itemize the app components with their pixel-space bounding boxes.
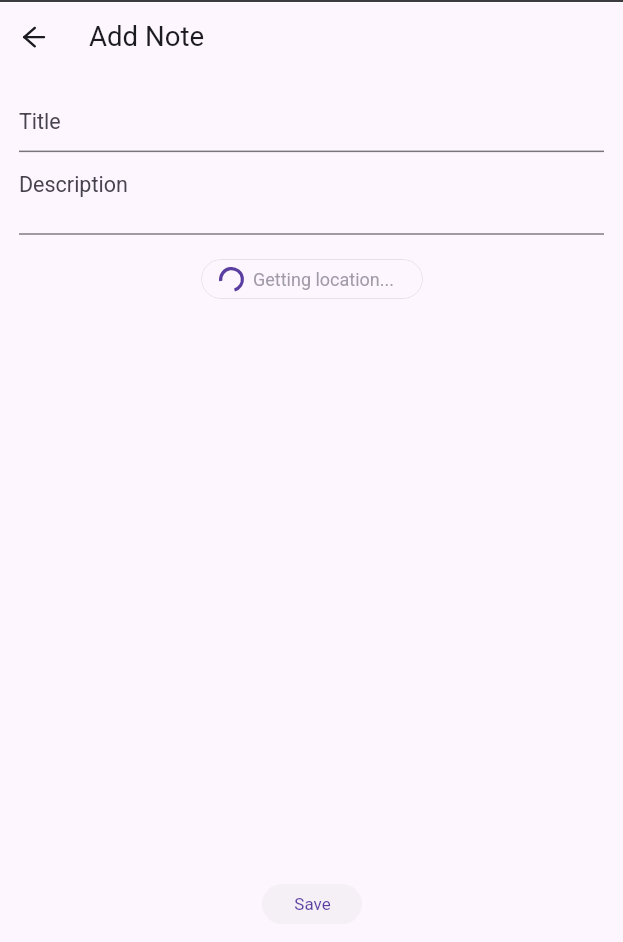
staticText: Getting location...	[253, 269, 395, 290]
button[interactable]: Back	[10, 13, 58, 61]
button[interactable]: Getting location...	[201, 259, 423, 299]
button[interactable]: Description	[19, 161, 604, 237]
button[interactable]: Save	[262, 884, 362, 924]
button[interactable]: Title	[19, 98, 604, 154]
staticText: Add Note	[89, 20, 205, 52]
staticText: Save	[294, 894, 331, 914]
staticText: Description	[19, 172, 128, 197]
staticText: Title	[19, 109, 61, 134]
